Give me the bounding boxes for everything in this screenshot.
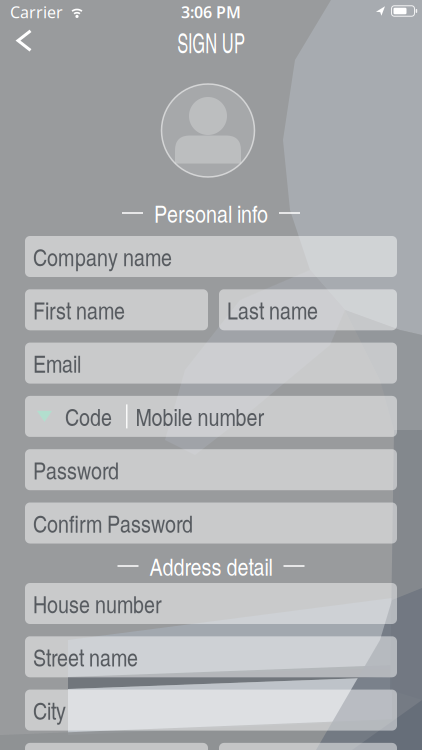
staticText: Last name [227,293,318,326]
button[interactable]: Password [25,449,397,490]
staticText: SIGN UP [164,23,258,61]
button[interactable]: State [25,743,208,750]
button[interactable]: First name [25,289,208,330]
staticText: Email [33,347,81,379]
staticText: 3:06 PM [181,1,241,23]
staticText: Password [33,453,119,486]
staticText: Confirm Password [33,506,193,539]
staticText: City [33,694,66,726]
button[interactable]: Company name [25,236,397,277]
button[interactable] [0,24,42,60]
button[interactable]: Zip code [219,743,397,750]
staticText: House number [33,587,162,620]
staticText: Personal info [154,196,268,229]
staticText: Mobile number [135,400,264,433]
button[interactable]: City [25,690,397,731]
button[interactable]: House number [25,583,397,624]
staticText: Company name [33,240,172,273]
button[interactable]: Email [25,343,397,384]
staticText: First name [33,293,125,326]
button[interactable]: Last name [219,289,397,330]
staticText: Code [65,400,112,433]
staticText: Carrier [10,1,63,23]
button[interactable]: Confirm Password [25,502,397,543]
button[interactable]: Street name [25,636,397,677]
button[interactable] [164,84,257,177]
staticText: Street name [33,640,138,673]
button[interactable]: Code [25,396,397,437]
staticText: Address detail [149,549,272,582]
